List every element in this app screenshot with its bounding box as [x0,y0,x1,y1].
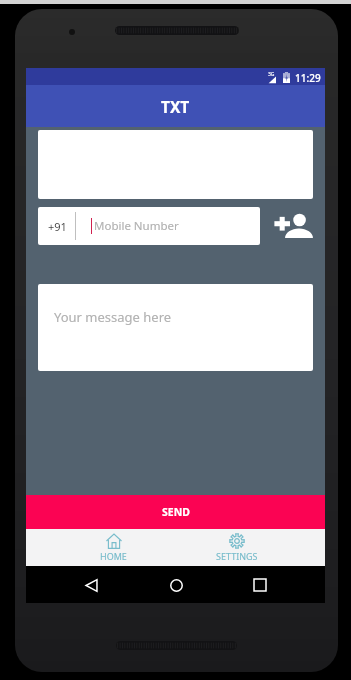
staticText: 11:29 [295,71,321,85]
staticText: SETTINGS [216,550,258,562]
button[interactable]: SETTINGS [175,529,299,566]
button[interactable]: SEND [26,495,325,529]
button[interactable]: Back [78,572,104,598]
button[interactable]: Your message here [38,284,313,371]
button[interactable]: Add contact [273,206,313,246]
button[interactable]: HOME [52,529,175,566]
staticText: HOME [100,550,127,562]
staticText: Your message here [54,308,172,326]
staticText: Mobile Number [94,218,179,234]
staticText: SEND [162,505,190,519]
button[interactable]: Recents [247,572,273,598]
button[interactable]: Home [163,572,189,598]
staticText: +91 [48,219,67,234]
staticText: 3G [268,71,275,78]
staticText: TXT [161,96,190,117]
button[interactable]: +91 [38,207,260,245]
